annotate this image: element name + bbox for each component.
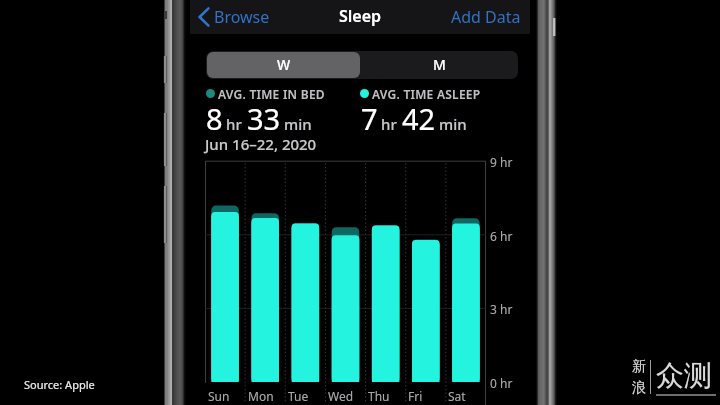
staticText: Thu: [368, 388, 390, 404]
staticText: M: [433, 55, 446, 74]
staticText: Sat: [448, 388, 466, 404]
button[interactable]: Back to Browse: [190, 2, 278, 32]
staticText: AVG. TIME ASLEEP: [372, 86, 481, 102]
staticText: W: [277, 55, 291, 74]
staticText: Tue: [288, 388, 309, 404]
staticText: min: [439, 114, 467, 134]
staticText: Mon: [248, 388, 274, 404]
staticText: Jun 16–22, 2020: [205, 134, 317, 154]
staticText: 7: [361, 99, 378, 138]
staticText: hr: [226, 114, 242, 134]
staticText: 浪: [632, 379, 646, 397]
button[interactable]: W: [207, 52, 360, 78]
staticText: 9 hr: [490, 154, 513, 170]
staticText: Fri: [408, 388, 423, 404]
staticText: 众测: [656, 358, 712, 393]
staticText: Wed: [328, 388, 354, 404]
staticText: min: [284, 114, 312, 134]
staticText: hr: [381, 114, 397, 134]
staticText: 6 hr: [490, 228, 513, 244]
staticText: Sun: [208, 388, 230, 404]
staticText: 新: [632, 358, 646, 376]
staticText: Browse: [214, 6, 270, 28]
staticText: 33: [247, 99, 281, 138]
staticText: Sleep: [339, 5, 382, 27]
button[interactable]: Add Data: [443, 0, 530, 34]
staticText: AVG. TIME IN BED: [218, 86, 325, 102]
button[interactable]: M: [361, 51, 518, 79]
staticText: 42: [402, 99, 436, 138]
staticText: Source: Apple: [24, 377, 95, 392]
staticText: 8: [206, 99, 223, 138]
staticText: 3 hr: [490, 301, 513, 317]
staticText: 0 hr: [490, 375, 513, 391]
